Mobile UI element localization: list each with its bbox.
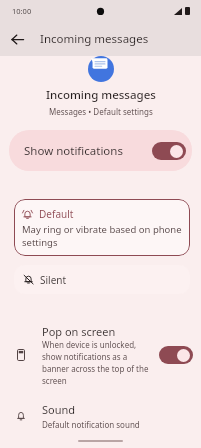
staticText: Default notification sound (42, 419, 140, 430)
staticText: Default (39, 207, 74, 221)
button[interactable]: Default (14, 199, 190, 256)
staticText: Incoming messages (40, 31, 149, 47)
staticText: Pop on screen (42, 324, 116, 339)
staticText: Incoming messages (46, 87, 156, 103)
staticText: Silent (40, 273, 67, 287)
staticText: May ring or vibrate based on phone setti… (22, 223, 182, 248)
staticText: When device is unlocked, show notificati… (42, 339, 151, 386)
staticText: Messages • Default settings (49, 106, 153, 117)
button[interactable]: Back (4, 26, 30, 52)
staticText: Show notifications (24, 143, 152, 159)
button[interactable]: Sound (0, 402, 201, 430)
staticText: Sound (42, 402, 76, 417)
staticText: 10:00 (12, 6, 32, 16)
button[interactable]: Silent (14, 265, 190, 294)
button[interactable]: Pop on screen (0, 324, 201, 386)
button[interactable]: Show notifications (9, 130, 192, 171)
button[interactable]: Toggle on (152, 142, 186, 160)
button[interactable]: Toggle on (159, 346, 193, 364)
